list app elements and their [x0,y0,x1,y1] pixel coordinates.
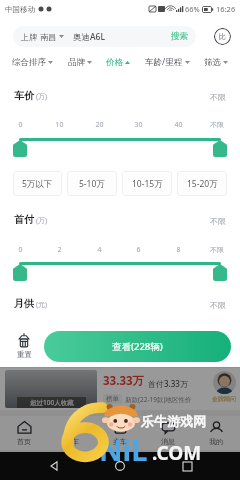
button[interactable]: 滑块 [13,140,27,157]
staticText: 中国移动 [5,5,35,14]
staticText: .COM [152,440,202,466]
staticText: 品牌 [68,57,85,68]
button[interactable]: 滑块 [213,140,227,157]
staticText: 首付3.33万 [148,378,188,389]
staticText: 15-20万 [187,178,218,190]
staticText: 首页 [17,437,31,446]
button[interactable]: 消息 [144,416,192,450]
button[interactable]: 5万以下 [13,171,62,196]
staticText: 乐牛游戏网 [141,413,206,429]
staticText: 0 [18,245,23,255]
staticText: 超过100人收藏 [30,398,74,407]
staticText: 5-10万 [79,178,105,190]
button[interactable]: 品牌 [65,51,95,73]
staticText: 2 [57,245,62,255]
button[interactable]: 5-10万 [67,171,117,196]
staticText: 买车 [65,437,79,446]
staticText: 南昌 [40,32,56,42]
staticText: 价格 [106,57,123,68]
staticText: NiL [99,430,148,469]
button[interactable]: 首页 [0,416,48,450]
staticText: 车价 [14,89,34,102]
button[interactable]: 10-15万 [122,171,172,196]
staticText: 榜单 [106,395,119,403]
staticText: (万) [36,216,48,226]
staticText: 不限 [210,300,226,310]
staticText: 搜索 [171,31,188,42]
button[interactable]: 价格 [103,51,133,73]
button[interactable]: 上牌 [13,26,196,47]
staticText: 车龄/里程 [145,56,183,68]
staticText: 8 [176,245,181,255]
staticText: 首付 [14,213,34,226]
button[interactable]: 滑块 [213,264,227,281]
staticText: (元) [36,300,48,310]
button[interactable]: 15-20万 [177,171,227,196]
staticText: 20 [95,120,104,130]
staticText: 66% [185,4,200,14]
staticText: 16:26 [216,4,236,14]
staticText: 卖车 [113,437,127,446]
button[interactable]: 我的 [192,416,240,450]
staticText: 不限 [210,120,224,129]
staticText: (万) [36,92,48,102]
button[interactable]: Recents [174,453,200,479]
staticText: 6 [136,245,141,255]
staticText: 5万以下 [22,178,53,190]
button[interactable]: 卖车 [96,416,144,450]
button[interactable]: 综合排序 [9,51,56,73]
button[interactable]: Back [41,453,67,479]
staticText: 0 [18,120,23,130]
staticText: 重置 [17,350,32,359]
staticText: 30 [134,120,143,130]
staticText: 消息 [161,437,175,446]
staticText: 筛选 [204,57,221,68]
button[interactable]: 重置 [10,333,38,359]
button[interactable]: 查看(228辆) [44,331,231,362]
staticText: 新款(22-19款)地区性价 [125,395,192,404]
staticText: 综合排序 [12,57,46,68]
staticText: 月供 [14,297,34,310]
button[interactable]: 对比 [214,28,231,45]
staticText: 40 [174,120,183,130]
staticText: 4 [97,245,102,255]
button[interactable]: 滑块 [13,264,27,281]
button[interactable]: 筛选 [201,51,231,73]
staticText: 不限 [210,245,224,254]
staticText: 我的 [209,437,223,446]
button[interactable]: 车龄/里程 [142,51,193,73]
staticText: 10-15万 [132,178,163,190]
staticText: 33.33万 [103,373,145,389]
staticText: 金牌顾问 [212,395,236,403]
staticText: 上牌 [21,31,40,42]
staticText: 比 [219,32,226,41]
staticText: 奥迪A6L [73,31,105,43]
staticText: 不限 [210,92,226,102]
staticText: 10 [55,120,64,130]
staticText: 不限 [210,216,226,226]
staticText: 查看(228辆) [112,340,163,353]
button[interactable]: 买车 [48,416,96,450]
button[interactable]: Home [107,453,133,479]
